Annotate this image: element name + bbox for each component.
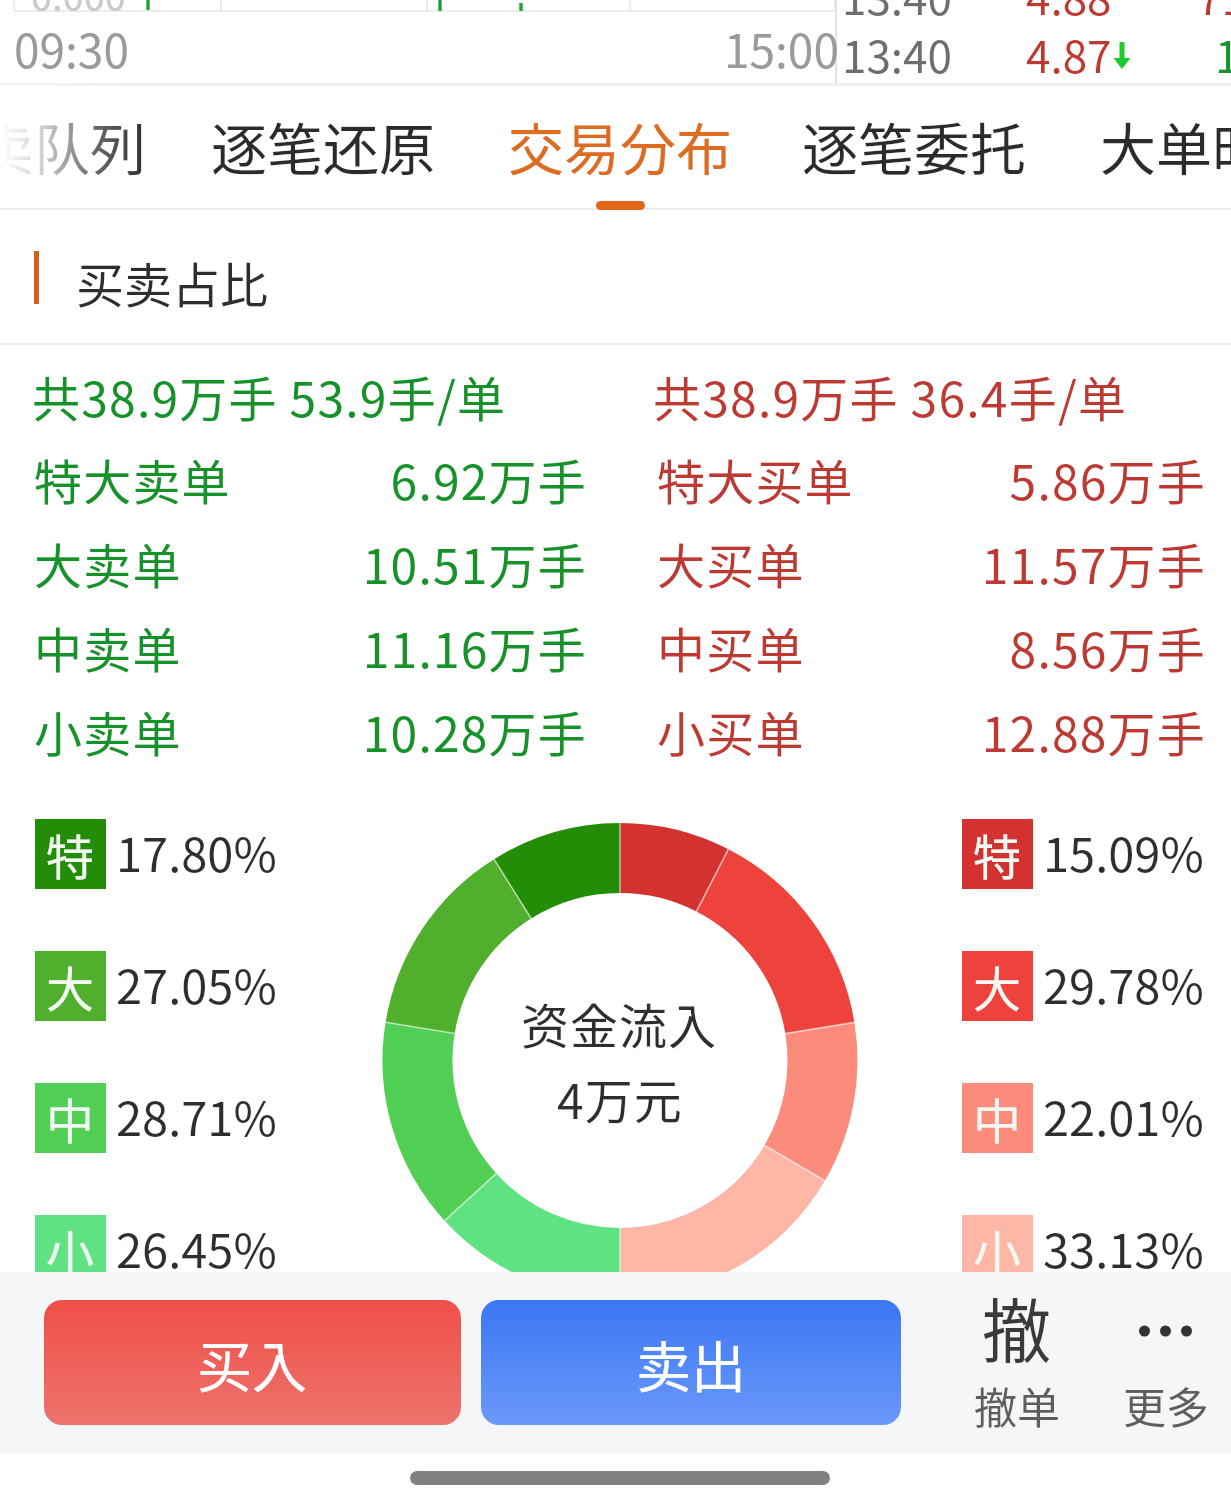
staticText: 特大卖单 <box>34 444 231 514</box>
staticText: 共38.9万手 53.9手/单 <box>32 361 507 431</box>
staticText: 大 <box>46 951 95 1021</box>
staticText: 逐笔还原 <box>211 105 435 186</box>
staticText: 5.86万手 <box>906 444 1206 514</box>
staticText: 大卖单 <box>34 528 182 598</box>
button[interactable]: 撤 <box>926 1272 1091 1453</box>
staticText: 逐笔委托 <box>802 105 1026 186</box>
staticText: 0.000 <box>31 0 126 22</box>
button[interactable]: 更多 <box>1080 1272 1231 1453</box>
staticText: 4万元 <box>557 1063 683 1133</box>
staticText: 15.09% <box>1043 817 1204 885</box>
staticText: 撤 <box>982 1277 1051 1377</box>
staticText: 中 <box>46 1083 95 1153</box>
staticText: 22.01% <box>1043 1081 1204 1149</box>
staticText: 71 <box>1197 0 1231 28</box>
staticText: 共38.9万手 36.4手/单 <box>653 361 1128 431</box>
staticText: 大单时间 <box>1100 105 1231 186</box>
button[interactable]: 逐笔委托 <box>766 85 1060 206</box>
staticText: 更多 <box>1123 1374 1209 1436</box>
staticText: 撤单 <box>974 1374 1060 1436</box>
staticText: 中买单 <box>657 612 805 682</box>
staticText: 6.92万手 <box>287 444 587 514</box>
button[interactable]: 大单时间 <box>1064 85 1231 206</box>
button[interactable]: 卖出 <box>481 1300 901 1425</box>
staticText: 11.57万手 <box>906 528 1206 598</box>
staticText: 小 <box>973 1215 1022 1285</box>
staticText: 13:40 <box>842 0 952 28</box>
button[interactable]: 逐笔还原 <box>175 85 469 206</box>
staticText: 15:00 <box>724 15 839 82</box>
staticText: 特 <box>973 819 1022 889</box>
staticText: 资金流入 <box>521 988 718 1058</box>
staticText: 特大买单 <box>657 444 854 514</box>
staticText: 买卖占比 <box>76 247 269 317</box>
staticText: 买卖队列 <box>0 105 146 186</box>
staticText: 11.16万手 <box>287 612 587 682</box>
staticText: 13:40 <box>842 22 952 86</box>
staticText: 4.87 <box>1026 22 1112 86</box>
staticText: 中 <box>973 1083 1022 1153</box>
staticText: 小买单 <box>657 696 805 766</box>
button[interactable]: 买入 <box>44 1300 461 1425</box>
staticText: 卖出 <box>636 1323 747 1403</box>
staticText: 17.80% <box>116 817 277 885</box>
staticText: 交易分布 <box>508 105 732 186</box>
staticText: 买入 <box>197 1323 308 1403</box>
staticText: 27.05% <box>116 949 277 1017</box>
staticText: 12.88万手 <box>906 696 1206 766</box>
staticText: 8.56万手 <box>906 612 1206 682</box>
staticText: 1 <box>1215 22 1231 86</box>
staticText: 小卖单 <box>34 696 182 766</box>
button[interactable]: 买卖队列 <box>0 85 180 206</box>
staticText: 28.71% <box>116 1081 277 1149</box>
button[interactable]: 交易分布 <box>472 85 766 206</box>
staticText: 4.88 <box>1026 0 1112 28</box>
staticText: 中卖单 <box>34 612 182 682</box>
staticText: 26.45% <box>116 1213 277 1281</box>
staticText: 29.78% <box>1043 949 1204 1017</box>
staticText: 33.13% <box>1043 1213 1204 1281</box>
staticText: 10.51万手 <box>287 528 587 598</box>
staticText: 09:30 <box>14 15 129 82</box>
staticText: 特 <box>46 819 95 889</box>
staticText: 10.28万手 <box>287 696 587 766</box>
staticText: 小 <box>46 1215 95 1285</box>
staticText: 大买单 <box>657 528 805 598</box>
staticText: 大 <box>973 951 1022 1021</box>
